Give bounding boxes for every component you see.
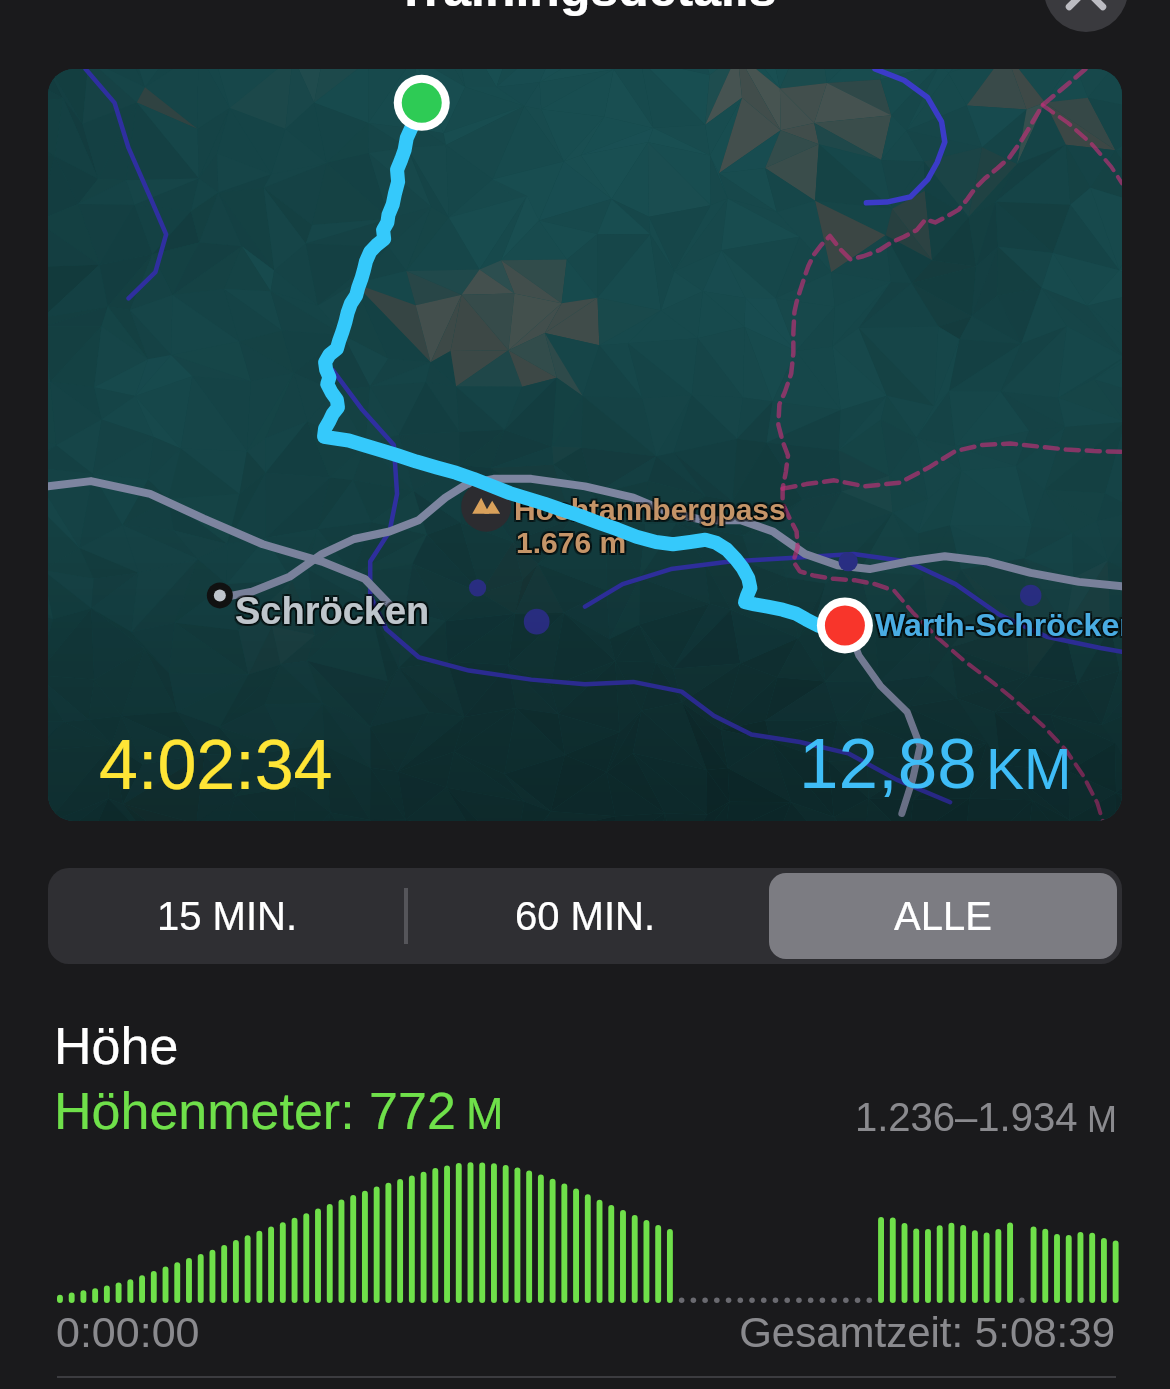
staticText: Höhe bbox=[54, 1017, 179, 1075]
staticText: 1.676 m bbox=[514, 524, 625, 558]
staticText: Warth-Schröcken bbox=[875, 605, 1122, 641]
staticText: 4:02:34 bbox=[99, 726, 333, 804]
staticText: Schröcken bbox=[233, 590, 428, 632]
staticText: Trainingsdetails bbox=[396, 0, 777, 17]
staticText: 0:00:00 bbox=[56, 1308, 200, 1356]
staticText: Warth-Schröcken bbox=[875, 609, 1122, 645]
staticText: 1.676 m bbox=[516, 526, 627, 560]
staticText: Warth-Schröcken bbox=[873, 605, 1122, 641]
staticText: Schröcken bbox=[233, 592, 428, 634]
staticText: Warth-Schröcken bbox=[877, 609, 1122, 645]
staticText: Schröcken bbox=[237, 592, 432, 634]
staticText: Schröcken bbox=[237, 590, 432, 632]
staticText: 1.676 m bbox=[518, 526, 629, 560]
staticText: Schröcken bbox=[235, 588, 430, 630]
staticText: KM bbox=[986, 737, 1072, 801]
staticText: 1.676 m bbox=[516, 528, 627, 562]
staticText: ALLE bbox=[894, 894, 992, 939]
staticText: Höhenmeter: 772 bbox=[54, 1082, 456, 1140]
staticText: 15 MIN. bbox=[157, 894, 298, 939]
staticText: Warth-Schröcken bbox=[877, 607, 1122, 643]
staticText: 1.236–1.934 bbox=[855, 1095, 1078, 1140]
staticText: 1.676 m bbox=[514, 526, 625, 560]
button[interactable]: Routenkarte bbox=[48, 69, 1122, 821]
button[interactable]: Schliessen bbox=[1044, 0, 1128, 32]
staticText: Hochtannbergpass bbox=[516, 495, 788, 529]
staticText: Hochtannbergpass bbox=[514, 495, 786, 529]
staticText: Schröcken bbox=[237, 588, 432, 630]
staticText: M bbox=[1087, 1099, 1117, 1139]
staticText: Hochtannbergpass bbox=[516, 493, 788, 527]
staticText: 1.676 m bbox=[514, 528, 625, 562]
staticText: Warth-Schröcken bbox=[873, 607, 1122, 643]
staticText: Hochtannbergpass bbox=[512, 491, 784, 525]
staticText: 1.676 m bbox=[518, 524, 629, 558]
staticText: Warth-Schröcken bbox=[875, 607, 1122, 643]
staticText: 12,88 bbox=[799, 724, 977, 803]
staticText: Gesamtzeit: 5:08:39 bbox=[0, 1309, 1115, 1356]
button[interactable]: ALLE bbox=[769, 873, 1117, 959]
staticText: Warth-Schröcken bbox=[873, 609, 1122, 645]
staticText: Schröcken bbox=[233, 588, 428, 630]
staticText: Hochtannbergpass bbox=[514, 493, 786, 527]
staticText: Hochtannbergpass bbox=[516, 491, 788, 525]
staticText: M bbox=[466, 1088, 504, 1138]
staticText: Hochtannbergpass bbox=[514, 491, 786, 525]
staticText: Schröcken bbox=[235, 592, 430, 634]
staticText: Hochtannbergpass bbox=[512, 493, 784, 527]
staticText: 1.676 m bbox=[518, 528, 629, 562]
staticText: 60 MIN. bbox=[515, 894, 656, 939]
staticText: 1.676 m bbox=[516, 524, 627, 558]
button[interactable]: 15 MIN. bbox=[53, 873, 401, 959]
staticText: Warth-Schröcken bbox=[877, 605, 1122, 641]
button[interactable]: 60 MIN. bbox=[411, 873, 759, 959]
staticText: Hochtannbergpass bbox=[512, 495, 784, 529]
staticText: Schröcken bbox=[235, 590, 430, 632]
